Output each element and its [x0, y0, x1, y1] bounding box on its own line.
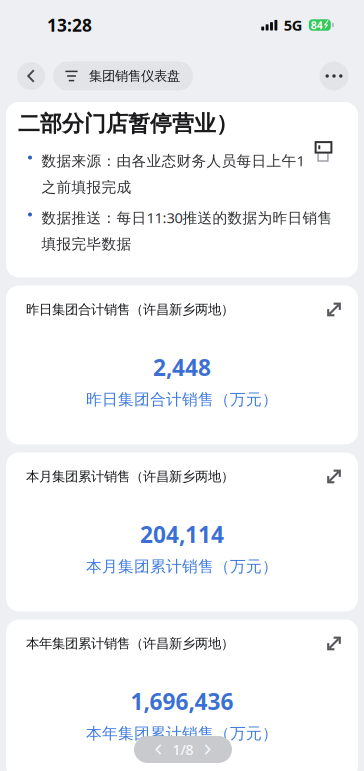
button[interactable]: 集团销售仪表盘: [53, 61, 193, 90]
staticText: 昨日集团合计销售（万元）: [86, 390, 278, 409]
staticText: 数据推送：每日11:30推送的数据为昨日销售 填报完毕数据: [41, 207, 332, 253]
staticText: 84: [311, 18, 323, 32]
staticText: 1,696,436: [130, 686, 233, 717]
button[interactable]: 更多: [312, 54, 356, 98]
staticText: 2,448: [153, 352, 211, 383]
button[interactable]: 返回: [9, 54, 53, 98]
staticText: 本年集团累计销售（万元）: [86, 724, 278, 743]
staticText: 昨日集团合计销售（许昌新乡两地）: [26, 301, 234, 318]
staticText: 13:28: [47, 13, 92, 37]
staticText: 本月集团累计销售（许昌新乡两地）: [26, 468, 234, 485]
staticText: 二部分门店暂停营业）: [18, 110, 238, 137]
button[interactable]: 投屏: [302, 130, 345, 173]
button[interactable]: 全屏: [322, 464, 346, 488]
button[interactable]: 全屏: [322, 631, 346, 655]
staticText: 数据来源：由各业态财务人员每日上午1 之前填报完成: [41, 150, 304, 196]
staticText: 集团销售仪表盘: [89, 68, 180, 84]
button[interactable]: 全屏: [322, 297, 346, 321]
staticText: 204,114: [140, 519, 224, 550]
staticText: 本月集团累计销售（万元）: [86, 557, 278, 576]
staticText: 1/8: [172, 740, 193, 759]
staticText: 本年集团累计销售（许昌新乡两地）: [26, 635, 234, 652]
staticText: 5G: [284, 15, 303, 35]
